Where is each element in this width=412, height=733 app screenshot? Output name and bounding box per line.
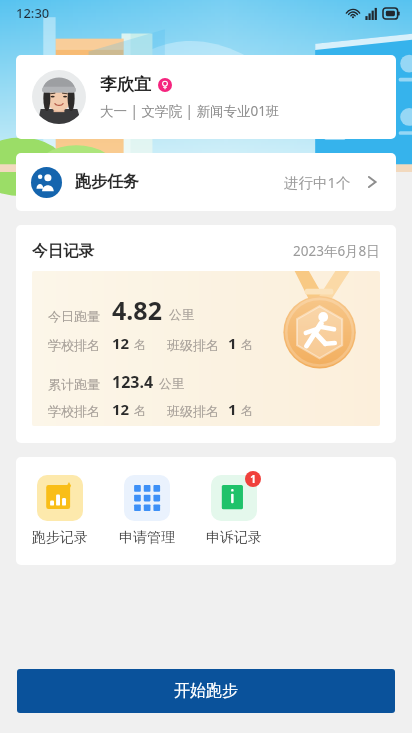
staticText: 班级排名	[167, 337, 219, 353]
button[interactable]: 申请管理	[119, 475, 175, 547]
staticText: 跑步任务	[75, 172, 139, 192]
staticText: 名	[134, 403, 147, 419]
staticText: 申诉记录	[206, 529, 262, 547]
staticText: 李欣宜	[100, 74, 151, 95]
staticText: 2023年6月8日	[293, 242, 380, 260]
staticText: 公里	[159, 376, 184, 392]
staticText: 进行中1个	[284, 172, 351, 192]
staticText: 名	[241, 337, 254, 353]
staticText: 今日跑量	[48, 308, 100, 324]
staticText: 大一 | 文学院 | 新闻专业01班	[100, 102, 280, 120]
staticText: 123.4	[112, 371, 154, 393]
staticText: 12	[112, 399, 130, 419]
button[interactable]: 跑步记录	[32, 475, 88, 547]
staticText: 4.82	[112, 293, 162, 327]
staticText: 1	[250, 472, 256, 486]
staticText: 班级排名	[167, 403, 219, 419]
staticText: 公里	[169, 307, 194, 323]
other: 查看跑步任务	[363, 173, 381, 191]
staticText: 今日记录	[32, 241, 94, 261]
button[interactable]: 李欣宜	[16, 55, 396, 139]
staticText: 累计跑量	[48, 376, 100, 392]
staticText: 名	[134, 337, 147, 353]
staticText: 12:30	[16, 4, 50, 22]
staticText: 学校排名	[48, 337, 100, 353]
button[interactable]: 跑步任务	[16, 153, 396, 211]
staticText: 1	[228, 399, 237, 419]
button[interactable]: 开始跑步	[17, 669, 395, 713]
staticText: 名	[241, 403, 254, 419]
staticText: 申请管理	[119, 529, 175, 547]
staticText: 1	[228, 333, 237, 353]
staticText: 开始跑步	[174, 681, 238, 701]
staticText: 跑步记录	[32, 529, 88, 547]
staticText: 学校排名	[48, 403, 100, 419]
button[interactable]: 1	[206, 475, 262, 547]
staticText: 12	[112, 333, 130, 353]
